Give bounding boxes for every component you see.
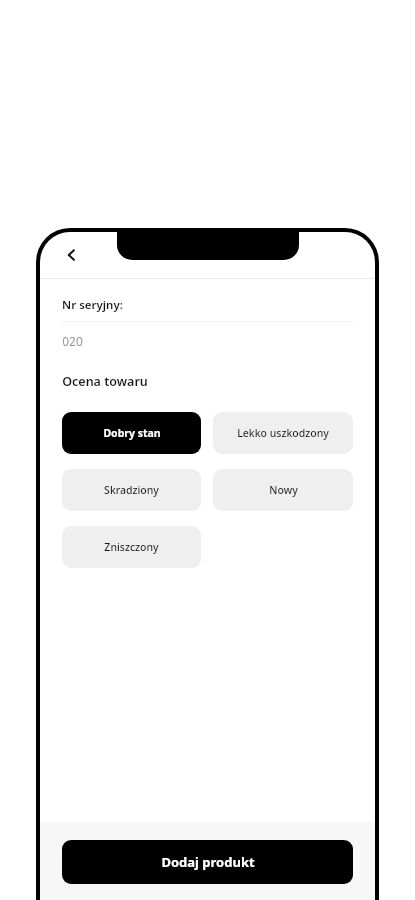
button[interactable]: Lekko uszkodzony	[213, 412, 353, 454]
button[interactable]: Dobry stan	[62, 412, 201, 454]
staticText: Dodaj produkt	[161, 853, 255, 871]
button[interactable]: Nowy	[213, 469, 353, 511]
staticText: KP 8m3	[182, 246, 233, 264]
button[interactable]: Skradziony	[62, 469, 201, 511]
staticText: Ocena towaru	[62, 373, 148, 390]
staticText: Zniszczony	[104, 540, 159, 554]
button[interactable]: Zniszczony	[62, 526, 201, 568]
staticText: Skradziony	[104, 483, 159, 497]
staticText: Lekko uszkodzony	[237, 426, 329, 440]
button[interactable]: Dodaj produkt	[62, 840, 353, 884]
staticText: 020	[62, 333, 83, 349]
staticText: Nr seryjny:	[62, 297, 123, 313]
staticText: Nowy	[269, 483, 298, 497]
button[interactable]: Back	[54, 237, 90, 273]
staticText: Dobry stan	[103, 426, 161, 440]
